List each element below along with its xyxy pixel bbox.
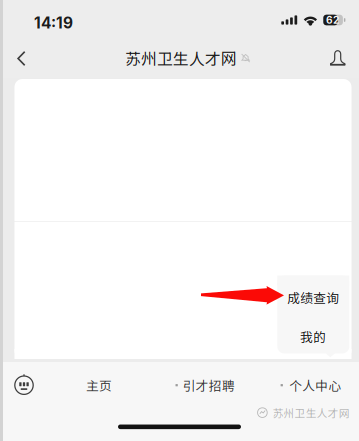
- button[interactable]: 主页: [75, 365, 123, 405]
- staticText: 苏州卫生人才网: [125, 47, 237, 69]
- button[interactable]: Profile: [318, 38, 358, 78]
- staticText: 14:19: [34, 13, 73, 32]
- staticText: 主页: [86, 376, 112, 394]
- staticText: 我的: [300, 327, 326, 346]
- button[interactable]: 成绩查询: [277, 275, 349, 319]
- button[interactable]: Back: [1, 38, 41, 78]
- button[interactable]: 我的: [277, 319, 349, 353]
- staticText: 个人中心: [289, 376, 341, 394]
- staticText: 引才招聘: [183, 376, 235, 394]
- staticText: 苏州卫生人才网: [273, 405, 350, 420]
- button[interactable]: 引才招聘: [175, 365, 237, 405]
- button[interactable]: 个人中心: [281, 365, 343, 405]
- staticText: 62: [326, 14, 339, 26]
- button[interactable]: Mini program menu: [7, 365, 41, 405]
- staticText: 成绩查询: [287, 288, 339, 307]
